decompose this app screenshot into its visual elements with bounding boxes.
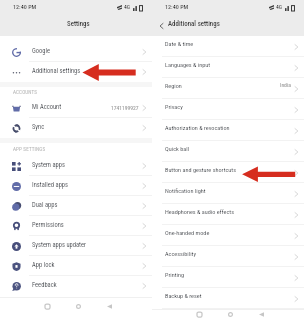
staticText: 12:40 PM xyxy=(165,3,189,10)
button[interactable]: App lock xyxy=(0,256,152,276)
button[interactable]: Printing xyxy=(152,267,304,288)
staticText: Quick ball xyxy=(165,145,190,152)
staticText: Additional settings xyxy=(168,20,220,28)
button[interactable]: One-handed mode xyxy=(152,225,304,246)
button[interactable]: Notification light xyxy=(152,183,304,204)
button[interactable]: Home xyxy=(221,309,239,319)
staticText: 1741199927 xyxy=(111,105,139,112)
staticText: APP SETTINGS xyxy=(13,146,46,152)
button[interactable]: Backup & reset xyxy=(152,288,304,309)
staticText: Button and gesture shortcuts xyxy=(165,166,236,173)
button[interactable]: Button and gesture shortcuts xyxy=(152,162,304,183)
button[interactable]: Accessibility xyxy=(152,246,304,267)
button[interactable]: System apps updater xyxy=(0,236,152,256)
button[interactable]: Mi Account xyxy=(0,98,152,118)
button[interactable]: Region xyxy=(152,78,304,99)
button[interactable]: Dual apps xyxy=(0,196,152,216)
button[interactable]: Headphones & audio effects xyxy=(152,204,304,225)
staticText: Dual apps xyxy=(32,201,58,209)
staticText: Accessibility xyxy=(165,250,196,257)
button[interactable]: Authorization & revocation xyxy=(152,120,304,141)
button[interactable]: Permissions xyxy=(0,216,152,236)
staticText: 4G xyxy=(276,4,283,11)
staticText: Notification light xyxy=(165,187,206,194)
staticText: Languages & input xyxy=(165,61,211,68)
button[interactable]: Back xyxy=(156,20,167,31)
staticText: Privacy xyxy=(165,103,183,110)
staticText: ACCOUNTS xyxy=(13,89,38,95)
staticText: App lock xyxy=(32,261,55,269)
staticText: Permissions xyxy=(32,221,64,229)
staticText: 4G xyxy=(124,4,131,11)
button[interactable]: Google xyxy=(0,42,152,62)
staticText: Printing xyxy=(165,271,185,278)
button[interactable]: Additional settings xyxy=(0,62,152,82)
button[interactable]: Recents xyxy=(190,309,208,319)
staticText: One-handed mode xyxy=(165,229,210,236)
staticText: Date & time xyxy=(165,40,194,47)
staticText: Sync xyxy=(32,123,45,131)
button[interactable]: Back xyxy=(252,309,270,319)
staticText: Mi Account xyxy=(32,103,62,111)
button[interactable]: Privacy xyxy=(152,99,304,120)
button[interactable]: Recents xyxy=(38,297,56,315)
button[interactable]: Quick ball xyxy=(152,141,304,162)
staticText: Google xyxy=(32,47,51,55)
staticText: Authorization & revocation xyxy=(165,124,230,131)
staticText: Additional settings xyxy=(32,67,81,75)
staticText: System apps xyxy=(32,161,65,169)
button[interactable]: Sync xyxy=(0,118,152,138)
staticText: System apps updater xyxy=(32,241,87,249)
button[interactable]: Installed apps xyxy=(0,176,152,196)
staticText: Feedback xyxy=(32,281,57,289)
staticText: Settings xyxy=(67,20,90,28)
button[interactable]: Languages & input xyxy=(152,57,304,78)
staticText: Region xyxy=(165,82,182,89)
staticText: Installed apps xyxy=(32,181,69,189)
staticText: Headphones & audio effects xyxy=(165,208,234,215)
button[interactable]: System apps xyxy=(0,156,152,176)
button[interactable]: Home xyxy=(69,297,87,315)
button[interactable]: Feedback xyxy=(0,276,152,296)
staticText: Backup & reset xyxy=(165,292,202,299)
button[interactable]: Back xyxy=(100,297,118,315)
staticText: 12:40 PM xyxy=(13,3,37,10)
staticText: India xyxy=(280,82,291,89)
button[interactable]: Date & time xyxy=(152,36,304,57)
